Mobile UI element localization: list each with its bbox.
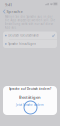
button[interactable]: Jetzt Sprache ändern: [16, 102, 44, 108]
button[interactable]: Back: [3, 9, 5, 14]
staticText: Sprache hinzufügen: [8, 42, 36, 46]
staticText: Wählen Sie die Sprache aus, in der die A…: [4, 15, 55, 29]
staticText: Jetzt Sprache ändern: [16, 103, 44, 107]
staticText: Sprache auf Deutsch ändern?: [9, 87, 51, 91]
staticText: 9:41: [5, 2, 12, 7]
staticText: Deutsch (Deutschland): [8, 34, 39, 37]
staticText: Sprache: [7, 9, 23, 14]
button[interactable]: Sprache hinzufügen: [3, 40, 57, 48]
button[interactable]: Deutsch (Deutschland): [3, 31, 57, 40]
staticText: Bestätigen: [19, 95, 41, 100]
